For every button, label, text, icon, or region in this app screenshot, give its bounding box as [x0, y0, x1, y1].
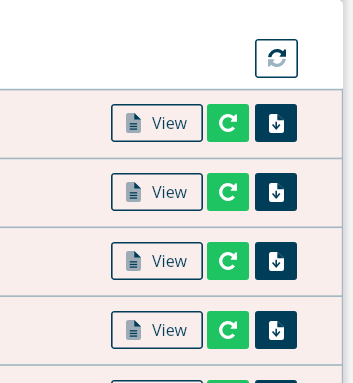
button[interactable]: Regenerate — [207, 242, 249, 280]
button[interactable]: Download — [255, 311, 297, 349]
staticText: View — [152, 319, 188, 341]
button[interactable]: Regenerate — [207, 380, 249, 383]
button[interactable]: Download — [255, 173, 297, 211]
button[interactable]: View — [111, 173, 203, 211]
button[interactable]: Regenerate — [207, 311, 249, 349]
button[interactable]: View — [111, 104, 203, 142]
button[interactable]: Download — [255, 242, 297, 280]
button[interactable]: Regenerate — [207, 173, 249, 211]
button[interactable]: Download — [255, 380, 297, 383]
button[interactable]: Download — [255, 104, 297, 142]
button[interactable]: Regenerate — [207, 104, 249, 142]
button[interactable]: View — [111, 380, 203, 383]
staticText: View — [152, 112, 188, 134]
button[interactable]: View — [111, 242, 203, 280]
staticText: View — [152, 181, 188, 203]
button[interactable]: Refresh — [255, 39, 298, 78]
button[interactable]: View — [111, 311, 203, 349]
staticText: View — [152, 250, 188, 272]
